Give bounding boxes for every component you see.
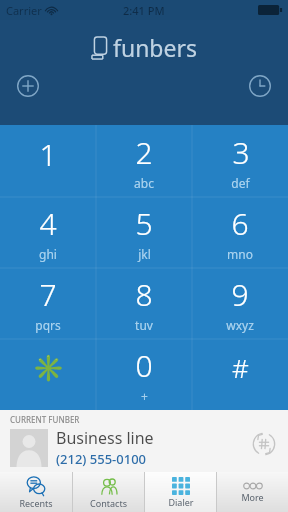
staticText: 2:41 PM <box>123 3 165 18</box>
button[interactable]: 7 <box>0 268 96 339</box>
button[interactable]: # <box>192 339 288 410</box>
staticText: 7 <box>39 274 57 315</box>
staticText: funbers <box>113 32 197 63</box>
staticText: Business line <box>56 427 154 449</box>
staticText: 3 <box>232 132 250 173</box>
staticText: + <box>141 388 148 404</box>
staticText: jkl <box>138 246 151 262</box>
button[interactable]: 8 <box>96 268 192 339</box>
button[interactable]: 9 <box>192 268 288 339</box>
button[interactable]: 5 <box>96 197 192 268</box>
button[interactable]: Add contact <box>8 66 48 106</box>
staticText: 4 <box>39 203 57 244</box>
button[interactable]: 1 <box>0 125 96 197</box>
staticText: tuv <box>135 317 153 333</box>
button[interactable]: Switch funber <box>248 428 280 460</box>
staticText: Dialer <box>168 496 194 508</box>
button[interactable]: 4 <box>0 197 96 268</box>
staticText: abc <box>134 175 154 191</box>
staticText: 6 <box>231 203 249 244</box>
button[interactable]: 0 <box>96 339 192 410</box>
staticText: 1 <box>39 134 57 175</box>
staticText: 0 <box>135 345 153 386</box>
staticText: ✳ <box>32 353 65 383</box>
button[interactable]: ✳ <box>0 339 96 410</box>
button[interactable]: 6 <box>192 197 288 268</box>
staticText: def <box>231 175 250 191</box>
staticText: 2 <box>135 132 153 173</box>
staticText: Contacts <box>90 497 127 509</box>
staticText: 9 <box>231 274 249 315</box>
staticText: wxyz <box>226 317 254 333</box>
button[interactable]: 2 <box>96 125 192 197</box>
staticText: mno <box>227 246 253 262</box>
staticText: 5 <box>135 203 153 244</box>
staticText: Carrier <box>6 3 42 18</box>
staticText: More <box>241 491 264 503</box>
button[interactable]: Dialer <box>145 472 216 512</box>
button[interactable]: 3 <box>192 125 288 197</box>
staticText: Recents <box>19 497 53 509</box>
button[interactable]: CURRENT FUNBER <box>0 410 288 472</box>
staticText: 8 <box>135 274 153 315</box>
button[interactable]: Contacts <box>73 472 144 512</box>
staticText: CURRENT FUNBER <box>10 414 80 425</box>
staticText: (212) 555-0100 <box>56 450 147 468</box>
button[interactable]: Recent calls <box>240 66 280 106</box>
staticText: ghi <box>39 246 57 262</box>
staticText: # <box>232 350 249 385</box>
staticText: pqrs <box>35 317 61 333</box>
button[interactable]: Recents <box>0 472 72 512</box>
button[interactable]: More <box>217 472 288 512</box>
